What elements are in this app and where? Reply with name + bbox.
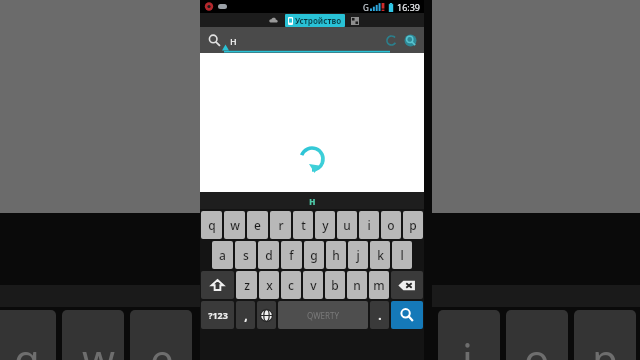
button[interactable]: Storage — [348, 14, 362, 27]
button[interactable]: , — [236, 301, 255, 329]
staticText: h — [332, 247, 340, 263]
button[interactable]: Backspace — [391, 271, 423, 299]
button[interactable]: d — [258, 241, 279, 269]
button[interactable]: u — [337, 211, 357, 239]
button[interactable]: l — [392, 241, 412, 269]
staticText: z — [244, 277, 250, 293]
staticText: o — [524, 330, 550, 360]
staticText: . — [378, 307, 382, 323]
button[interactable]: y — [315, 211, 335, 239]
button[interactable]: ?123 — [201, 301, 234, 329]
button[interactable]: s — [235, 241, 256, 269]
staticText: j — [356, 247, 360, 263]
staticText: a — [219, 247, 226, 263]
button[interactable]: k — [370, 241, 390, 269]
staticText: n — [353, 277, 361, 293]
button[interactable]: Cloud — [263, 14, 283, 27]
staticText: t — [301, 217, 306, 233]
button[interactable]: i — [359, 211, 379, 239]
staticText: w — [230, 217, 240, 233]
button[interactable]: r — [270, 211, 291, 239]
button[interactable]: Refresh — [384, 33, 399, 48]
staticText: e — [150, 330, 174, 360]
staticText: c — [288, 277, 294, 293]
staticText: н — [309, 194, 316, 208]
staticText: x — [266, 277, 273, 293]
staticText: Устройство — [295, 15, 342, 26]
button[interactable]: a — [212, 241, 233, 269]
staticText: q — [208, 217, 216, 233]
button[interactable]: f — [281, 241, 302, 269]
button[interactable]: m — [369, 271, 389, 299]
staticText: QWERTY — [307, 310, 340, 321]
button[interactable]: Search — [206, 32, 222, 48]
staticText: н — [230, 33, 237, 48]
staticText: w — [82, 330, 116, 360]
button[interactable]: j — [348, 241, 368, 269]
button[interactable]: Shift — [201, 271, 234, 299]
button[interactable]: Устройство — [285, 14, 345, 27]
staticText: G — [363, 2, 369, 13]
button[interactable]: b — [325, 271, 345, 299]
staticText: s — [243, 247, 249, 263]
staticText: k — [377, 247, 384, 263]
staticText: r — [278, 217, 284, 233]
button[interactable]: z — [236, 271, 257, 299]
staticText: v — [310, 277, 317, 293]
staticText: 16:39 — [397, 1, 421, 13]
button[interactable]: c — [281, 271, 301, 299]
button[interactable]: Voice search — [402, 32, 418, 48]
button[interactable]: p — [403, 211, 423, 239]
staticText: i — [462, 330, 473, 360]
staticText: i — [367, 217, 371, 233]
staticText: u — [343, 217, 351, 233]
staticText: g — [310, 247, 318, 263]
button[interactable]: h — [326, 241, 346, 269]
staticText: m — [373, 277, 385, 293]
staticText: , — [244, 307, 248, 323]
button[interactable]: g — [304, 241, 324, 269]
button[interactable]: . — [370, 301, 389, 329]
button[interactable]: e — [247, 211, 268, 239]
button[interactable]: Change language — [257, 301, 276, 329]
staticText: ?123 — [208, 309, 228, 321]
button[interactable]: Search — [391, 301, 423, 329]
staticText: e — [254, 217, 261, 233]
staticText: d — [265, 247, 273, 263]
button[interactable]: o — [381, 211, 401, 239]
button[interactable]: v — [303, 271, 323, 299]
staticText: q — [14, 330, 40, 360]
button[interactable]: QWERTY — [278, 301, 368, 329]
staticText: b — [331, 277, 339, 293]
button[interactable]: w — [224, 211, 245, 239]
button[interactable]: n — [347, 271, 367, 299]
button[interactable]: q — [201, 211, 222, 239]
staticText: l — [400, 247, 404, 263]
staticText: f — [289, 247, 294, 263]
staticText: y — [322, 217, 329, 233]
button[interactable]: t — [293, 211, 313, 239]
staticText: p — [409, 217, 417, 233]
button[interactable]: н — [309, 192, 316, 209]
staticText: p — [592, 330, 618, 360]
button[interactable]: x — [259, 271, 279, 299]
staticText: o — [387, 217, 395, 233]
